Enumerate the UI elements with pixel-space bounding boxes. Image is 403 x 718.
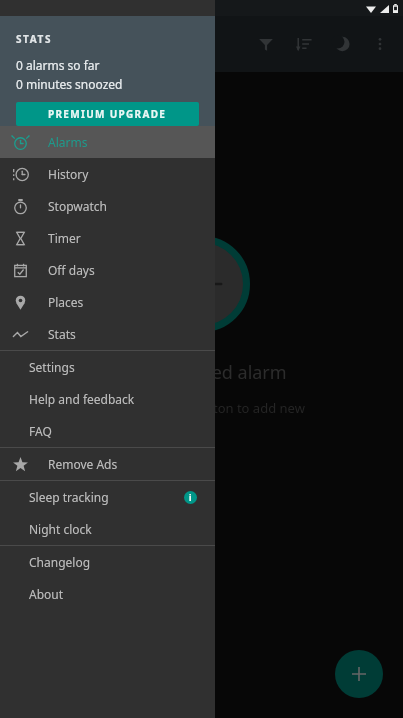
- button[interactable]: PREMIUM UPGRADE: [16, 102, 199, 126]
- staticText: Settings: [29, 359, 75, 375]
- button[interactable]: About: [0, 578, 215, 610]
- button[interactable]: Filter: [247, 25, 285, 63]
- staticText: Changelog: [29, 554, 91, 570]
- button[interactable]: Sort: [285, 25, 323, 63]
- staticText: Remove Ads: [48, 456, 118, 472]
- button[interactable]: Night mode: [323, 25, 361, 63]
- staticText: i: [189, 492, 192, 503]
- staticText: About: [29, 586, 64, 602]
- button[interactable]: Changelog: [0, 546, 215, 578]
- staticText: No scheduled alarm: [117, 360, 287, 385]
- staticText: STATS: [16, 32, 53, 46]
- staticText: History: [48, 166, 89, 182]
- staticText: Help and feedback: [29, 391, 135, 407]
- staticText: Stopwatch: [48, 198, 107, 214]
- button[interactable]: Add alarm: [335, 650, 383, 698]
- button[interactable]: Alarms: [0, 126, 215, 158]
- other: Info: [184, 491, 197, 504]
- staticText: 0 minutes snoozed: [16, 76, 123, 92]
- button[interactable]: Places: [0, 286, 215, 318]
- staticText: Places: [48, 294, 84, 310]
- button[interactable]: Night clock: [0, 513, 215, 545]
- staticText: Sleep tracking: [29, 489, 109, 505]
- staticText: Alarms: [48, 134, 88, 150]
- staticText: Stats: [48, 326, 76, 342]
- button[interactable]: More options: [361, 25, 399, 63]
- staticText: FAQ: [29, 423, 52, 439]
- staticText: Timer: [48, 230, 81, 246]
- button[interactable]: Off days: [0, 254, 215, 286]
- button[interactable]: Remove Ads: [0, 448, 215, 480]
- staticText: Night clock: [29, 521, 92, 537]
- staticText: Off days: [48, 262, 95, 278]
- button[interactable]: Stopwatch: [0, 190, 215, 222]
- button[interactable]: Settings: [0, 351, 215, 383]
- staticText: PREMIUM UPGRADE: [48, 107, 167, 121]
- staticText: 0 alarms so far: [16, 57, 100, 73]
- button[interactable]: Timer: [0, 222, 215, 254]
- button[interactable]: Sleep tracking: [0, 481, 215, 513]
- button[interactable]: Stats: [0, 318, 215, 350]
- button[interactable]: Help and feedback: [0, 383, 215, 415]
- button[interactable]: FAQ: [0, 415, 215, 447]
- staticText: Tap on the add button to add new alarm: [98, 399, 305, 435]
- button[interactable]: History: [0, 158, 215, 190]
